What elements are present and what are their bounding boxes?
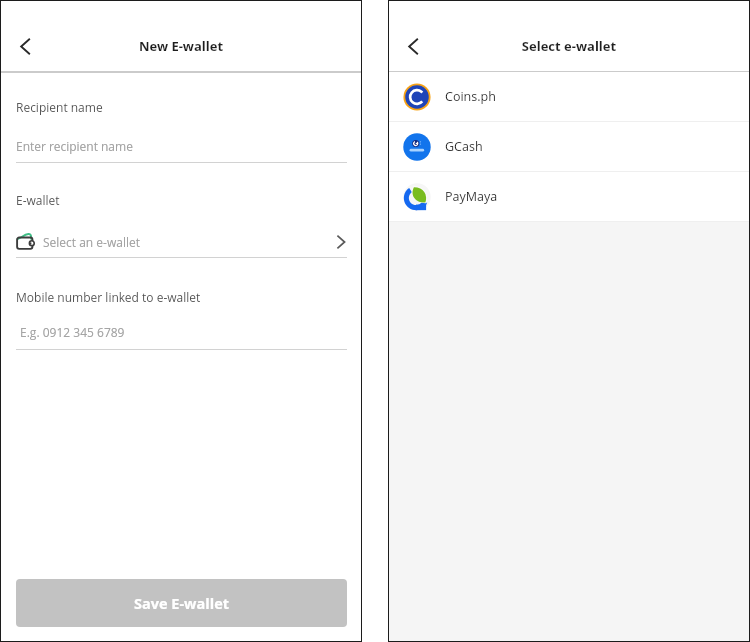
staticText: Coins.ph bbox=[445, 88, 496, 105]
staticText: Enter recipient name bbox=[16, 138, 133, 154]
button[interactable]: PayMaya bbox=[389, 172, 749, 221]
staticText: E.g. 0912 345 6789 bbox=[20, 324, 125, 340]
button[interactable]: Save E-wallet bbox=[16, 579, 347, 627]
button[interactable]: Back bbox=[13, 34, 38, 59]
button[interactable]: Coins.ph bbox=[389, 72, 749, 121]
staticText: GCash bbox=[445, 138, 483, 155]
staticText: E-wallet bbox=[16, 192, 60, 208]
staticText: Mobile number linked to e-wallet bbox=[16, 289, 201, 305]
other: Choose e-wallet bbox=[333, 234, 349, 250]
button[interactable]: Select an e-wallet bbox=[1, 229, 361, 255]
staticText: PayMaya bbox=[445, 188, 498, 205]
button[interactable]: Back bbox=[401, 34, 426, 59]
staticText: Select e-wallet bbox=[389, 37, 749, 55]
staticText: Recipient name bbox=[16, 99, 103, 115]
button[interactable]: GCash bbox=[389, 122, 749, 171]
staticText: Select an e-wallet bbox=[43, 234, 140, 250]
staticText: Save E-wallet bbox=[134, 594, 229, 614]
staticText: New E-wallet bbox=[1, 37, 361, 55]
